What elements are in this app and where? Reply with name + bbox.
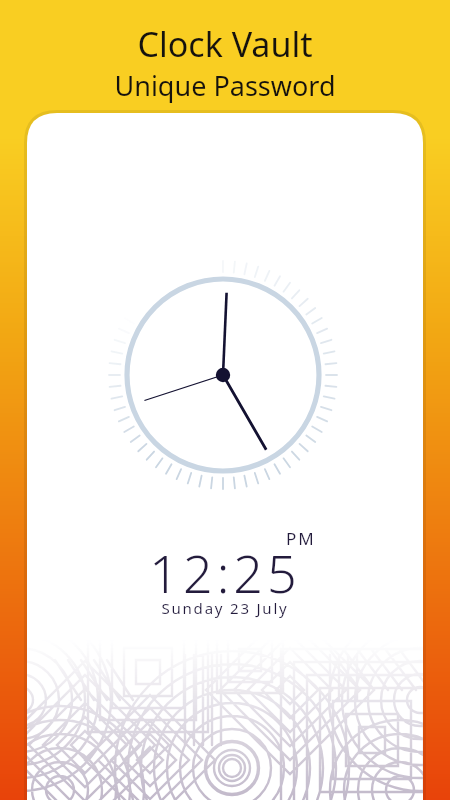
staticText: 12:25 <box>0 537 450 800</box>
button[interactable]: Clock screen preview <box>0 0 450 800</box>
staticText: Unique Password <box>0 67 450 800</box>
button[interactable]: Clock Vault <box>0 21 450 800</box>
staticText: PM <box>286 527 316 550</box>
staticText: Sunday 23 July <box>0 598 450 800</box>
